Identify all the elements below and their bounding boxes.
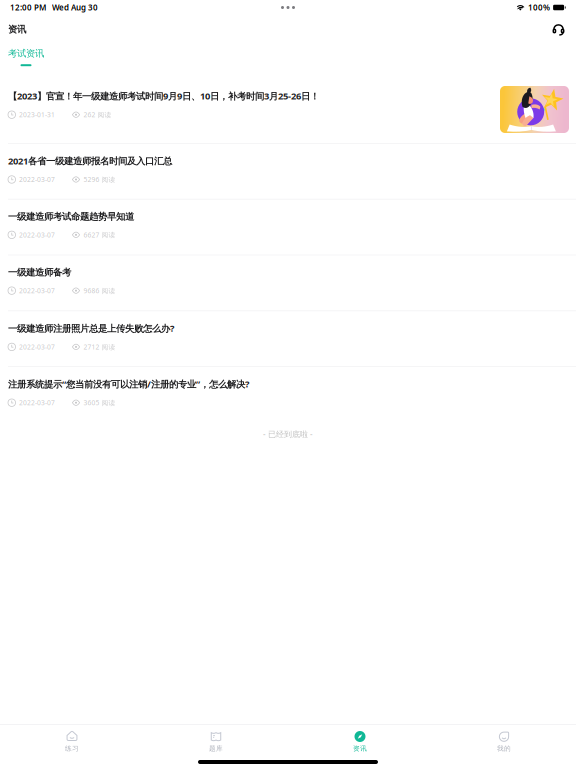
staticText: 2022-03-07 [19,398,55,407]
button[interactable]: 【2023】官宣！年一级建造师考试时间9月9日、10日，补考时间3月25-26日… [0,70,576,144]
staticText: 5296 阅读 [83,175,115,184]
button[interactable]: 客服 [549,20,568,39]
staticText: 2022-03-07 [19,175,55,184]
staticText: 资讯 [353,744,367,753]
staticText: 【2023】官宣！年一级建造师考试时间9月9日、10日，补考时间3月25-26日… [8,90,319,102]
staticText: 注册系统提示“您当前没有可以注销/注册的专业”，怎么解决? [8,378,249,390]
staticText: 6627 阅读 [83,230,115,239]
button[interactable]: 练习 [0,725,144,756]
staticText: 2712 阅读 [83,342,115,351]
staticText: 9686 阅读 [83,286,115,295]
staticText: 2022-03-07 [19,230,55,239]
button[interactable]: 注册系统提示“您当前没有可以注销/注册的专业”，怎么解决? [0,367,576,423]
staticText: Wed Aug 30 [52,2,98,13]
staticText: 2023-01-31 [19,110,55,119]
button[interactable]: 一级建造师备考 [0,255,576,311]
staticText: 2022-03-07 [19,342,55,351]
button[interactable]: 题库 [144,725,288,756]
staticText: 练习 [65,744,79,753]
staticText: 一级建造师注册照片总是上传失败怎么办? [8,322,174,334]
staticText: 我的 [497,744,511,753]
button[interactable]: 资讯 [288,725,432,756]
staticText: 262 阅读 [83,110,111,119]
staticText: 100% [528,2,550,13]
staticText: 12:00 PM [10,2,46,13]
staticText: 一级建造师考试命题趋势早知道 [8,211,134,222]
staticText: 2022-03-07 [19,286,55,295]
button[interactable]: 我的 [432,725,576,756]
staticText: 题库 [209,744,223,753]
staticText: 一级建造师备考 [8,267,71,278]
staticText: 3605 阅读 [83,398,115,407]
staticText: 考试资讯 [8,48,44,59]
button[interactable]: 2021各省一级建造师报名时间及入口汇总 [0,144,576,200]
staticText: 2021各省一级建造师报名时间及入口汇总 [8,155,172,167]
button[interactable]: 一级建造师考试命题趋势早知道 [0,200,576,255]
staticText: - 已经到底啦 - [263,429,313,439]
button[interactable]: 考试资讯 [0,48,52,66]
staticText: 资讯 [8,24,26,35]
button[interactable]: 一级建造师注册照片总是上传失败怎么办? [0,311,576,367]
